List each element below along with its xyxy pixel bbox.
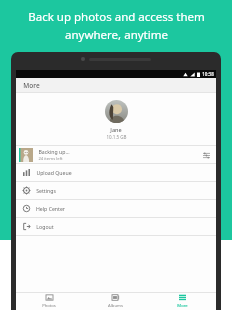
button[interactable]: Albums bbox=[82, 293, 149, 310]
button[interactable]: Logout bbox=[16, 218, 216, 235]
staticText: anywhere, anytime bbox=[65, 27, 168, 43]
button[interactable]: Settings bbox=[16, 182, 216, 199]
staticText: 10:38 bbox=[202, 71, 214, 77]
staticText: Albums bbox=[108, 303, 123, 309]
button[interactable]: Jane bbox=[16, 93, 216, 145]
staticText: Backing up... bbox=[38, 148, 70, 155]
button[interactable]: More bbox=[149, 293, 216, 310]
staticText: Back up photos and access them bbox=[28, 9, 205, 25]
staticText: Settings bbox=[36, 187, 56, 194]
staticText: More bbox=[177, 303, 188, 309]
staticText: 24 items left bbox=[38, 156, 63, 162]
staticText: More bbox=[23, 81, 40, 90]
staticText: Upload Queue bbox=[36, 169, 72, 176]
staticText: Help Center bbox=[36, 205, 65, 212]
button[interactable]: Help Center bbox=[16, 200, 216, 217]
button[interactable]: Upload Queue bbox=[16, 164, 216, 181]
button[interactable]: Photos bbox=[16, 293, 82, 310]
staticText: Jane bbox=[110, 126, 122, 133]
staticText: 10.1.5 GB bbox=[106, 134, 127, 140]
staticText: Photos bbox=[42, 303, 56, 309]
staticText: Logout bbox=[36, 223, 54, 230]
button[interactable]: Backing up... bbox=[16, 146, 216, 163]
button[interactable]: Upload options bbox=[200, 149, 212, 161]
